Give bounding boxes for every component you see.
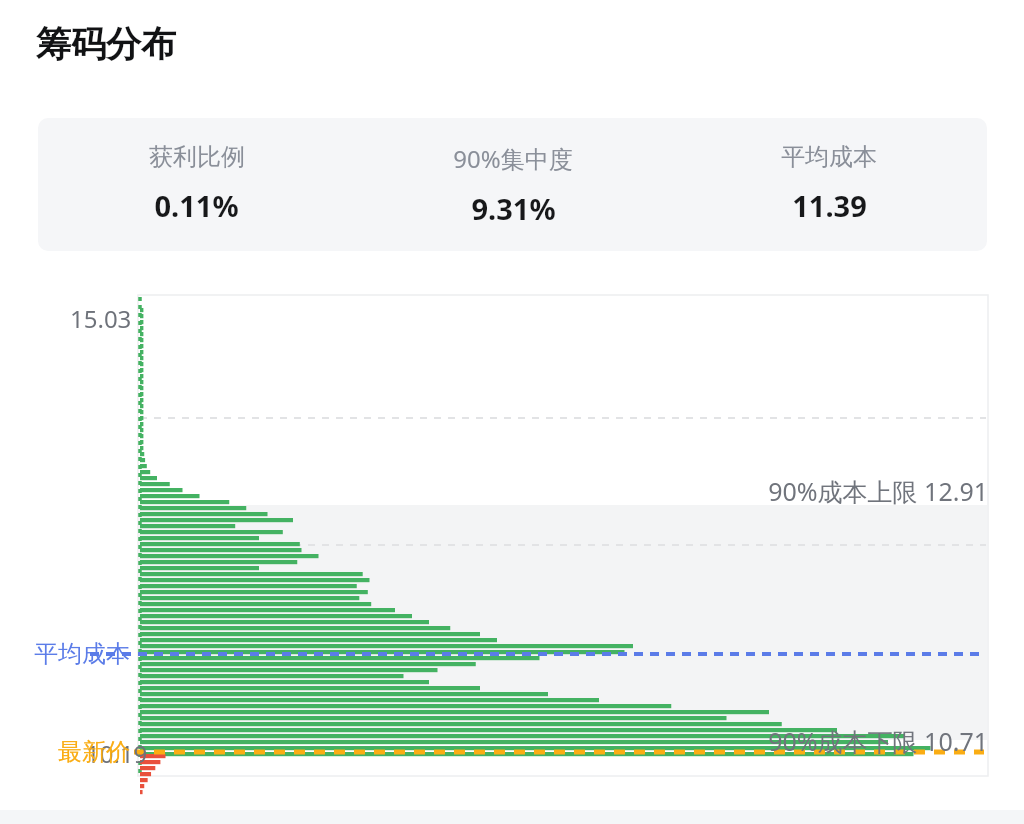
button[interactable]: 90%集中度: [355, 142, 671, 228]
staticText: 90%成本上限 12.91: [0, 474, 988, 508]
staticText: 最新价: [58, 737, 130, 767]
staticText: 90%集中度: [453, 142, 573, 175]
staticText: 筹码分布: [36, 22, 176, 66]
button[interactable]: 筹码分布图表: [0, 0, 1024, 824]
staticText: 0.11%: [154, 186, 239, 225]
staticText: 90%成本下限 10.71: [0, 724, 988, 758]
staticText: 9.31%: [471, 189, 556, 228]
button[interactable]: 获利比例: [38, 142, 355, 225]
staticText: 10.19: [86, 737, 148, 770]
staticText: 平均成本: [34, 639, 130, 669]
staticText: 平均成本: [781, 142, 877, 172]
button[interactable]: 筹码分布: [36, 22, 176, 66]
staticText: 15.03: [70, 302, 132, 335]
staticText: 获利比例: [149, 142, 245, 172]
button[interactable]: 平均成本: [671, 142, 987, 225]
staticText: 11.39: [792, 186, 867, 225]
